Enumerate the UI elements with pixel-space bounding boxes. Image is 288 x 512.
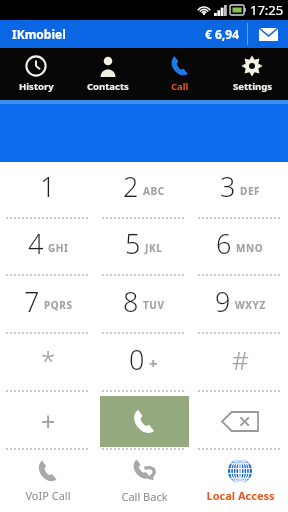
- button[interactable]: History: [0, 48, 72, 100]
- button[interactable]: Settings: [216, 48, 288, 100]
- staticText: Call: [171, 80, 189, 93]
- button[interactable]: 4: [0, 219, 96, 276]
- staticText: Call Back: [121, 489, 168, 504]
- staticText: WXYZ: [235, 298, 266, 312]
- button[interactable]: Contacts: [72, 48, 144, 100]
- staticText: 2: [123, 168, 139, 205]
- staticText: PQRS: [44, 298, 73, 312]
- staticText: Settings: [233, 80, 272, 93]
- button[interactable]: +: [0, 392, 96, 450]
- button[interactable]: *: [0, 334, 96, 392]
- staticText: Contacts: [87, 80, 129, 93]
- staticText: VoIP Call: [25, 488, 71, 503]
- staticText: 17:25: [250, 1, 284, 19]
- button[interactable]: VoIP Call: [0, 450, 96, 512]
- button[interactable]: 0: [96, 334, 192, 392]
- staticText: DEF: [240, 184, 261, 198]
- button[interactable]: 7: [0, 276, 96, 334]
- button[interactable]: 8: [96, 276, 192, 334]
- staticText: 8: [123, 283, 139, 320]
- staticText: ABC: [143, 184, 165, 198]
- button[interactable]: Backspace: [192, 392, 288, 450]
- button[interactable]: Call: [144, 48, 216, 100]
- staticText: 0: [129, 341, 145, 378]
- button[interactable]: #: [192, 334, 288, 392]
- staticText: MNO: [236, 241, 264, 255]
- button[interactable]: 9: [192, 276, 288, 334]
- staticText: History: [19, 80, 54, 93]
- button[interactable]: Messages: [248, 20, 288, 48]
- staticText: 4: [28, 225, 44, 262]
- button[interactable]: 6: [192, 219, 288, 276]
- staticText: +: [149, 353, 159, 373]
- button[interactable]: 5: [96, 219, 192, 276]
- staticText: 7: [24, 283, 40, 320]
- staticText: 9: [215, 283, 231, 320]
- staticText: JKL: [145, 241, 163, 255]
- staticText: *: [41, 342, 56, 377]
- button[interactable]: 2: [96, 162, 192, 219]
- button[interactable]: 3: [192, 162, 288, 219]
- staticText: +: [41, 404, 56, 438]
- staticText: #: [232, 342, 249, 377]
- staticText: 5: [125, 225, 141, 262]
- staticText: € 6,94: [205, 26, 239, 42]
- button[interactable]: 1: [0, 162, 96, 219]
- button[interactable]: Call: [100, 396, 189, 447]
- staticText: 1: [40, 168, 56, 205]
- staticText: Local Access: [206, 488, 275, 503]
- staticText: IKmobiel: [12, 26, 66, 42]
- staticText: 3: [220, 168, 236, 205]
- button[interactable]: Local Access: [192, 450, 288, 512]
- staticText: TUV: [143, 298, 165, 312]
- staticText: 6: [216, 225, 232, 262]
- staticText: GHI: [48, 241, 69, 255]
- button[interactable]: Call Back: [96, 450, 192, 512]
